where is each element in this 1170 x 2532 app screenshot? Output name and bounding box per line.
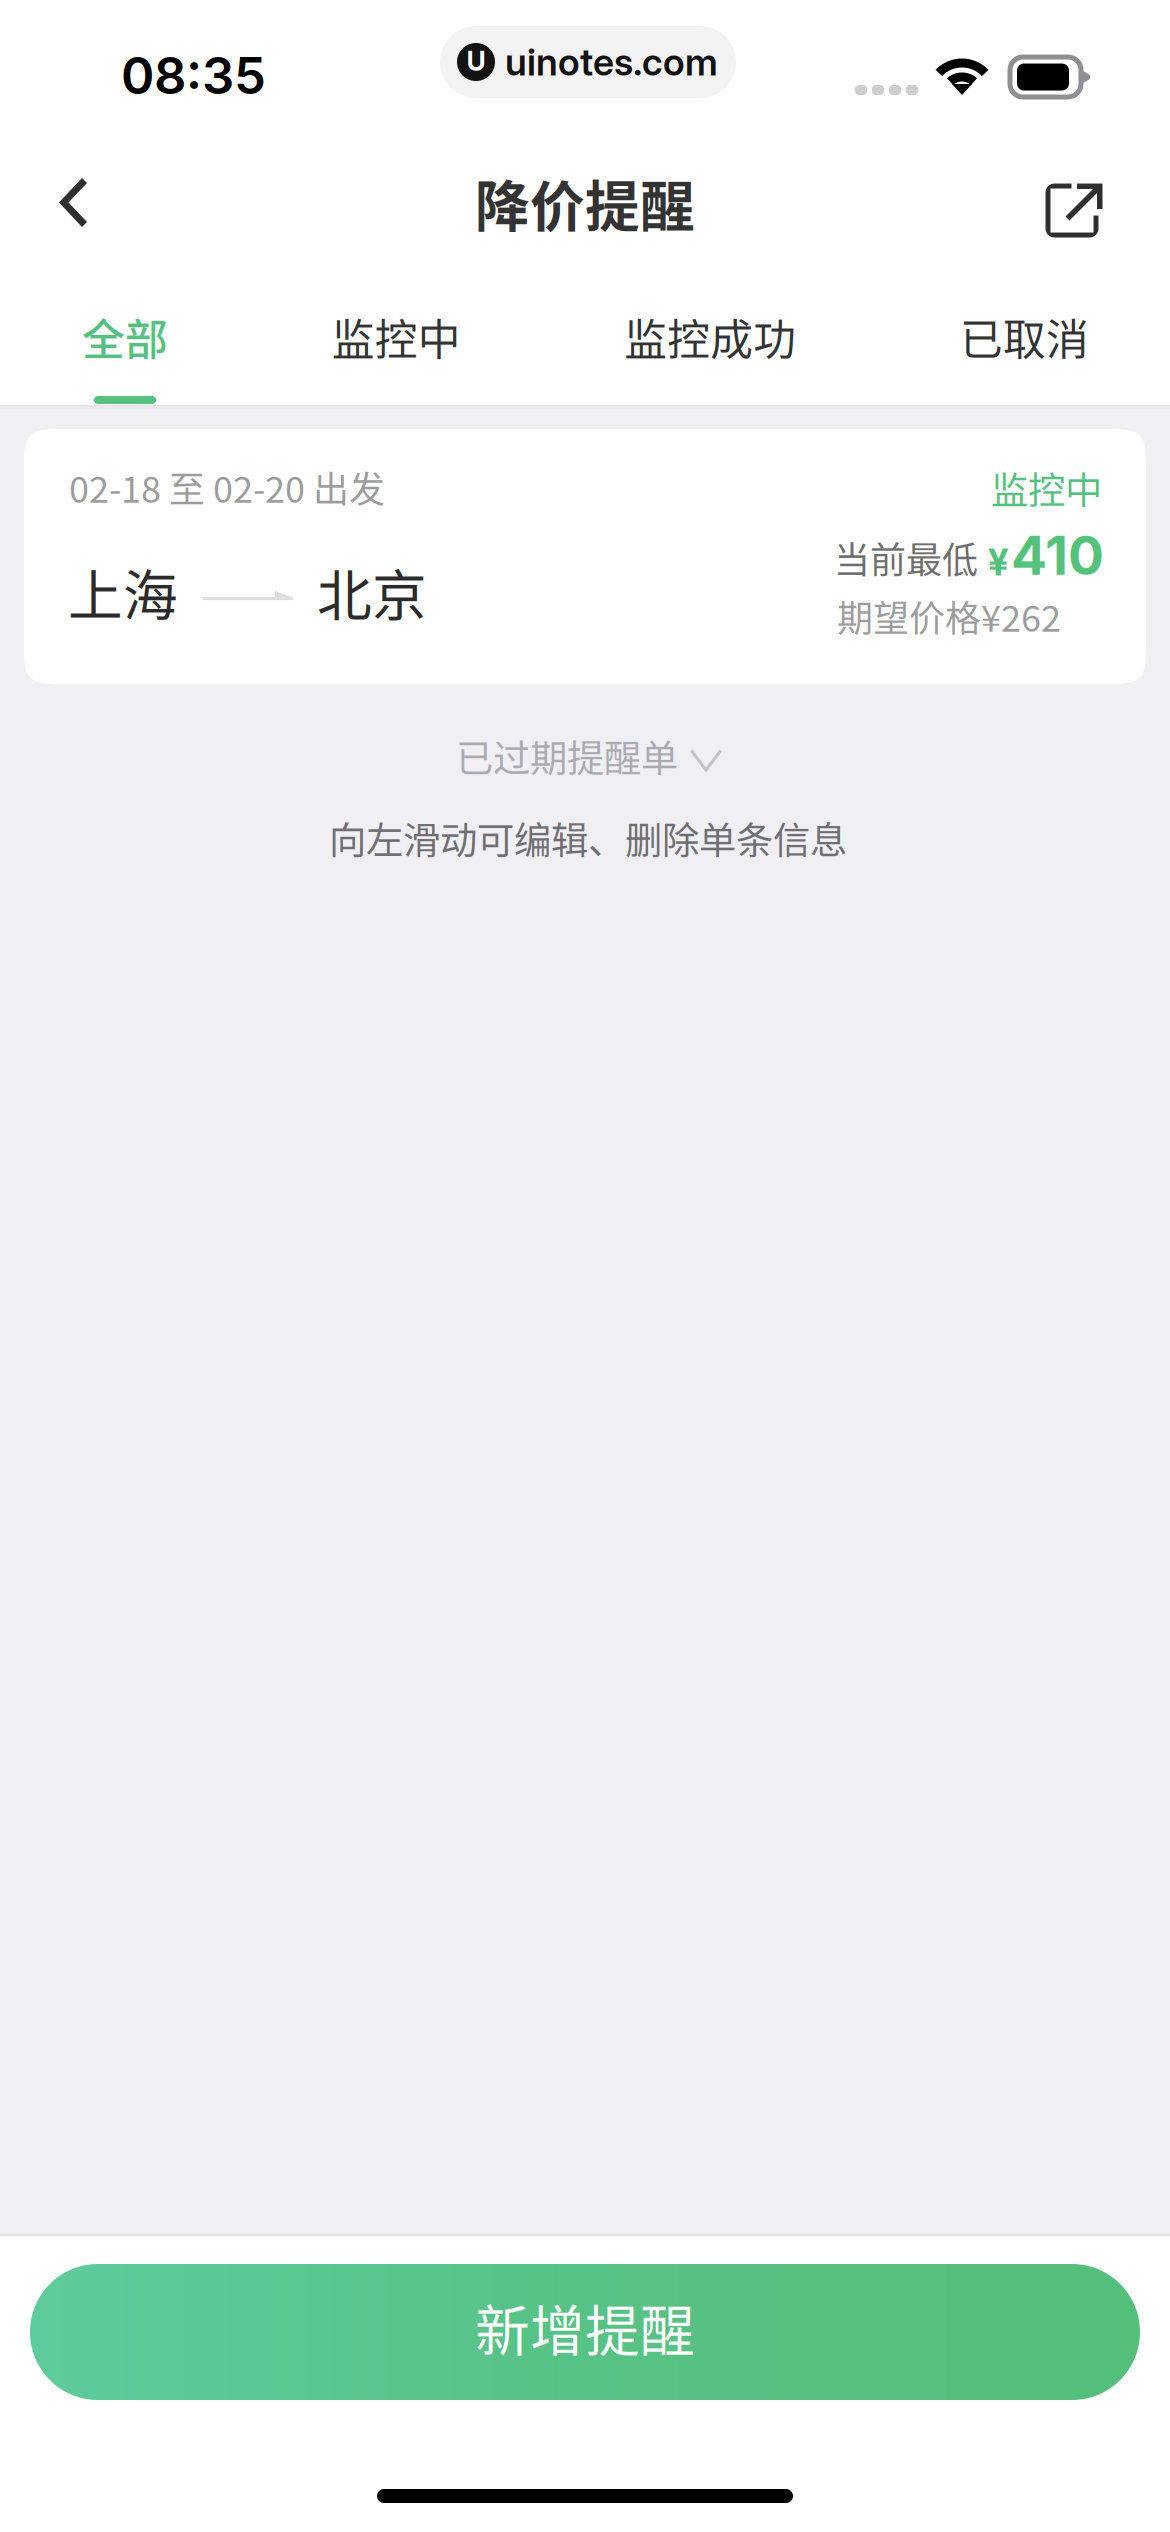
staticText: 当前最低	[834, 531, 978, 583]
staticText: 已过期提醒单	[456, 729, 678, 783]
staticText: 全部	[82, 306, 168, 368]
staticText: 监控成功	[624, 306, 796, 368]
staticText: uinotes.com	[505, 39, 718, 85]
button[interactable]: 全部	[82, 265, 168, 405]
staticText: 北京	[317, 552, 427, 631]
button[interactable]: 监控成功	[624, 265, 796, 405]
staticText: 降价提醒	[475, 163, 695, 242]
staticText: 监控中	[991, 461, 1102, 515]
staticText: 期望价格¥262	[837, 590, 1061, 642]
staticText: 监控中	[332, 306, 461, 368]
staticText: 410	[1011, 523, 1104, 587]
staticText: 新增提醒	[475, 2287, 695, 2367]
staticText: U	[466, 45, 485, 77]
staticText: 已取消	[960, 306, 1089, 368]
button[interactable]: 新增提醒	[30, 2264, 1140, 2400]
button[interactable]: 已取消	[960, 265, 1089, 405]
staticText: ¥	[988, 539, 1009, 585]
staticText: 08:35	[121, 45, 266, 106]
button[interactable]: 已过期提醒单	[452, 720, 718, 792]
button[interactable]: Back	[14, 140, 130, 265]
staticText: 上海	[68, 552, 178, 631]
staticText: 02-18 至 02-20 出发	[69, 461, 385, 513]
button[interactable]: 02-18 至 02-20 出发	[24, 429, 1146, 684]
button[interactable]: 监控中	[332, 265, 461, 405]
staticText: 向左滑动可编辑、删除单条信息	[329, 811, 847, 865]
button[interactable]: Share	[1022, 140, 1132, 265]
